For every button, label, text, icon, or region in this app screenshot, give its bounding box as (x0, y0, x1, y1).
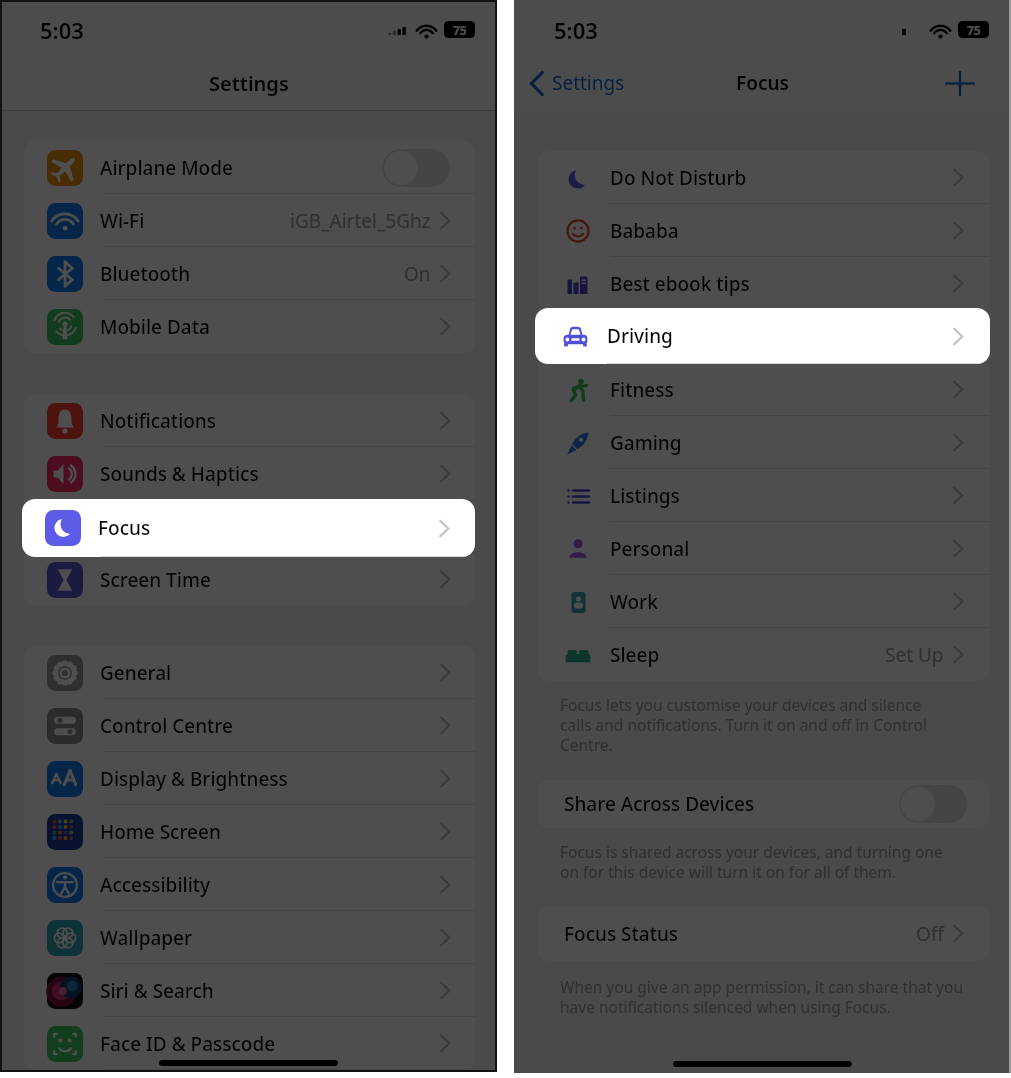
staticText: Work (610, 589, 658, 615)
button[interactable]: Settings (530, 70, 625, 96)
staticText: General (100, 660, 172, 686)
staticText: On (404, 261, 431, 287)
button[interactable]: Listings (538, 469, 989, 522)
staticText: Driving (610, 324, 676, 350)
staticText: Gaming (610, 430, 682, 456)
button[interactable]: Focus Status (564, 906, 963, 961)
staticText: Focus (98, 515, 151, 541)
button[interactable]: Best ebook tips (538, 257, 989, 310)
staticText: Accessibility (100, 872, 211, 898)
button[interactable]: Sounds & Haptics (24, 447, 475, 500)
staticText: Wallpaper (100, 925, 192, 951)
staticText: Mobile Data (100, 314, 210, 340)
button[interactable]: Fitness (538, 363, 989, 416)
staticText: Settings (209, 70, 289, 97)
staticText: Focus is shared across your devices, and… (560, 841, 1001, 882)
button[interactable]: Display & Brightness (24, 752, 475, 805)
button[interactable]: Home Screen (24, 805, 475, 858)
staticText: Wi-Fi (100, 208, 145, 234)
staticText: Driving (607, 323, 673, 349)
staticText: Listings (610, 483, 680, 509)
staticText: 75 (453, 22, 467, 38)
staticText: Set Up (885, 642, 944, 668)
button[interactable]: Driving (535, 308, 990, 364)
button[interactable]: Focus (22, 499, 475, 557)
staticText: Best ebook tips (610, 271, 750, 297)
staticText: Airplane Mode (100, 155, 233, 181)
button[interactable]: Siri & Search (24, 964, 475, 1017)
button[interactable]: Bababa (538, 204, 989, 257)
staticText: Focus Status (564, 921, 679, 947)
button[interactable]: Sleep (538, 628, 989, 681)
button[interactable]: Toggle (382, 149, 450, 187)
staticText: Home Screen (100, 819, 221, 845)
staticText: Control Centre (100, 713, 233, 739)
button[interactable]: Airplane Mode (24, 141, 475, 194)
button[interactable]: Toggle (899, 785, 967, 823)
staticText: Siri & Search (100, 978, 214, 1004)
button[interactable]: Add focus (943, 66, 977, 100)
button[interactable]: Face ID & Passcode (24, 1017, 475, 1070)
staticText: Focus (736, 70, 789, 96)
button[interactable]: Mobile Data (24, 300, 475, 353)
staticText: Off (916, 921, 944, 947)
staticText: Sleep (610, 642, 660, 668)
button[interactable]: Wallpaper (24, 911, 475, 964)
staticText: Bababa (610, 218, 679, 244)
staticText: Do Not Disturb (610, 165, 747, 191)
button[interactable]: Wi-Fi (24, 194, 475, 247)
button[interactable]: Control Centre (24, 699, 475, 752)
staticText: 5:03 (40, 15, 84, 45)
staticText: Notifications (100, 408, 217, 434)
button[interactable]: Driving (538, 310, 989, 363)
staticText: Settings (552, 70, 625, 96)
button[interactable]: General (24, 646, 475, 699)
staticText: Screen Time (100, 567, 211, 593)
button[interactable]: Bluetooth (24, 247, 475, 300)
button[interactable]: Gaming (538, 416, 989, 469)
staticText: Face ID & Passcode (100, 1031, 276, 1057)
staticText: When you give an app permission, it can … (560, 976, 1001, 1017)
staticText: Display & Brightness (100, 766, 288, 792)
staticText: Personal (610, 536, 690, 562)
staticText: 75 (967, 22, 981, 38)
staticText: 5:03 (554, 15, 598, 45)
staticText: Sounds & Haptics (100, 461, 259, 487)
staticText: iGB_Airtel_5Ghz (290, 208, 431, 234)
staticText: Share Across Devices (564, 791, 755, 817)
staticText: Bluetooth (100, 261, 191, 287)
staticText: Fitness (610, 377, 674, 403)
button[interactable]: Accessibility (24, 858, 475, 911)
staticText: Focus (100, 514, 153, 540)
button[interactable]: Focus (24, 500, 475, 553)
button[interactable]: Do Not Disturb (538, 151, 989, 204)
button[interactable]: Personal (538, 522, 989, 575)
button[interactable]: Notifications (24, 394, 475, 447)
button[interactable]: Work (538, 575, 989, 628)
staticText: Focus lets you customise your devices an… (560, 694, 1001, 755)
button[interactable]: Screen Time (24, 553, 475, 606)
